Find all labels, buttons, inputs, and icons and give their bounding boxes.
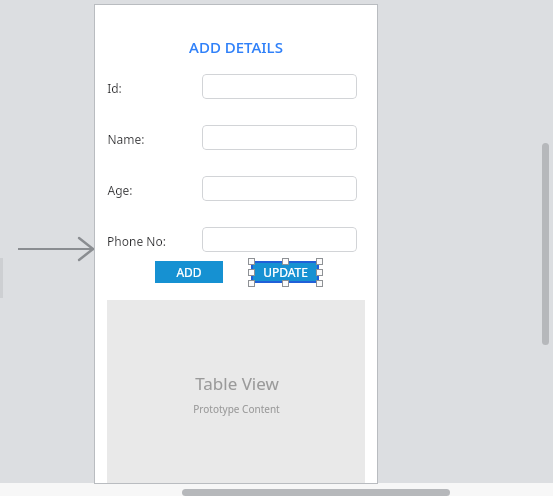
button[interactable]: Name: input field: [202, 125, 357, 150]
button[interactable]: Age: input field: [202, 176, 357, 201]
button[interactable]: Horizontal scrollbar: [182, 489, 450, 496]
staticText: UPDATE: [263, 264, 308, 280]
button[interactable]: Table View: [107, 300, 365, 484]
staticText: Name:: [107, 131, 145, 147]
other: Segue arrow: [18, 238, 94, 260]
staticText: ADD: [176, 264, 202, 280]
button[interactable]: UPDATE: [251, 261, 319, 283]
staticText: Phone No:: [107, 233, 166, 249]
staticText: Id:: [107, 80, 122, 96]
button[interactable]: ADD: [155, 261, 223, 283]
staticText: Prototype Content: [193, 402, 280, 416]
staticText: Age:: [107, 182, 133, 198]
staticText: Table View: [195, 372, 279, 395]
staticText: ADD DETAILS: [189, 37, 283, 57]
button[interactable]: Phone No: input field: [202, 227, 357, 252]
button[interactable]: Id: input field: [202, 74, 357, 99]
